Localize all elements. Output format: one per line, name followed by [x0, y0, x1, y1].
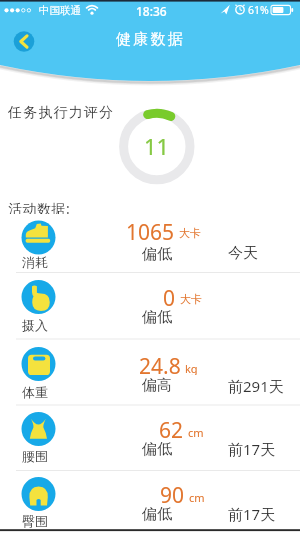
staticText: 大卡 [179, 226, 201, 240]
staticText: 今天 [228, 244, 258, 262]
button[interactable] [0, 405, 300, 468]
staticText: 摄入 [22, 317, 48, 333]
staticText: 前17天 [228, 504, 276, 522]
staticText: 偏高 [142, 376, 172, 394]
staticText: 活动数据: [8, 199, 71, 214]
staticText: 偏低 [142, 505, 172, 523]
staticText: 90 [160, 481, 185, 505]
staticText: 健康数据 [116, 30, 185, 48]
button[interactable] [0, 470, 300, 533]
staticText: kg [185, 361, 198, 375]
staticText: 偏低 [142, 440, 172, 458]
button[interactable] [12, 29, 37, 54]
staticText: 腰围 [22, 448, 48, 464]
staticText: 体重 [22, 384, 48, 400]
staticText: 62 [159, 416, 184, 440]
staticText: 18:36 [136, 3, 167, 17]
staticText: 偏低 [142, 245, 172, 263]
button[interactable] [0, 213, 300, 276]
staticText: 11 [144, 131, 170, 160]
staticText: 61% [248, 3, 269, 17]
staticText: cm [189, 490, 205, 504]
button[interactable] [0, 272, 300, 335]
staticText: 24.8 [139, 352, 181, 376]
staticText: 臀围 [22, 513, 48, 529]
staticText: 1065 [126, 218, 175, 242]
staticText: 前17天 [228, 439, 276, 457]
staticText: 中国联通 [39, 4, 81, 17]
staticText: 任务执行力评分 [8, 104, 115, 120]
staticText: 偏低 [142, 308, 172, 326]
staticText: cm [188, 425, 204, 439]
button[interactable] [0, 339, 300, 402]
staticText: 0 [163, 284, 176, 308]
staticText: 前291天 [228, 376, 284, 394]
staticText: 大卡 [180, 292, 202, 306]
staticText: 消耗 [22, 254, 48, 270]
